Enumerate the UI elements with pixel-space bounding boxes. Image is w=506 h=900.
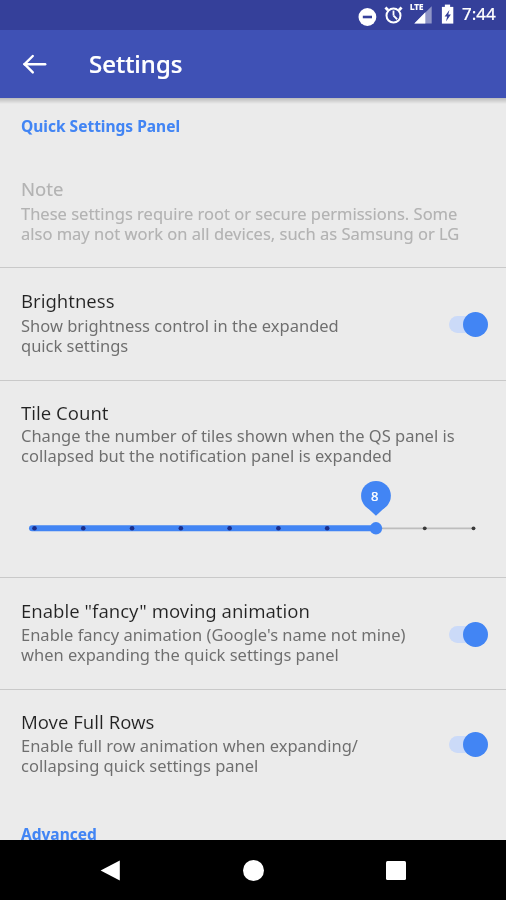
- staticText: 8: [371, 487, 379, 501]
- button[interactable]: Toggle: [443, 614, 495, 654]
- button[interactable]: Recent apps: [366, 840, 426, 900]
- staticText: Settings: [89, 47, 183, 80]
- staticText: Show brightness control in the expanded …: [21, 314, 339, 357]
- button[interactable]: Back: [11, 40, 59, 88]
- staticText: Enable full row animation when expanding…: [21, 734, 358, 777]
- button[interactable]: [0, 380, 506, 577]
- button[interactable]: Back: [80, 840, 140, 900]
- button[interactable]: [0, 267, 506, 379]
- staticText: Quick Settings Panel: [21, 115, 181, 136]
- staticText: Tile Count: [21, 400, 109, 425]
- button[interactable]: Home: [223, 840, 283, 900]
- button[interactable]: Advanced: [0, 811, 506, 851]
- staticText: Advanced: [21, 823, 97, 844]
- button[interactable]: [0, 578, 506, 689]
- button[interactable]: [0, 689, 506, 800]
- staticText: Enable fancy animation (Google's name no…: [21, 623, 406, 666]
- button[interactable]: Toggle: [443, 724, 495, 764]
- staticText: Move Full Rows: [21, 709, 155, 734]
- staticText: Change the number of tiles shown when th…: [21, 424, 455, 467]
- staticText: These settings require root or secure pe…: [21, 202, 460, 245]
- staticText: Enable "fancy" moving animation: [21, 598, 310, 623]
- staticText: LTE: [410, 1, 424, 12]
- staticText: 7:44: [462, 2, 496, 25]
- button[interactable]: Toggle: [443, 304, 495, 344]
- staticText: Note: [21, 176, 64, 201]
- button[interactable]: Quick Settings Panel: [0, 103, 506, 143]
- staticText: Brightness: [21, 288, 115, 313]
